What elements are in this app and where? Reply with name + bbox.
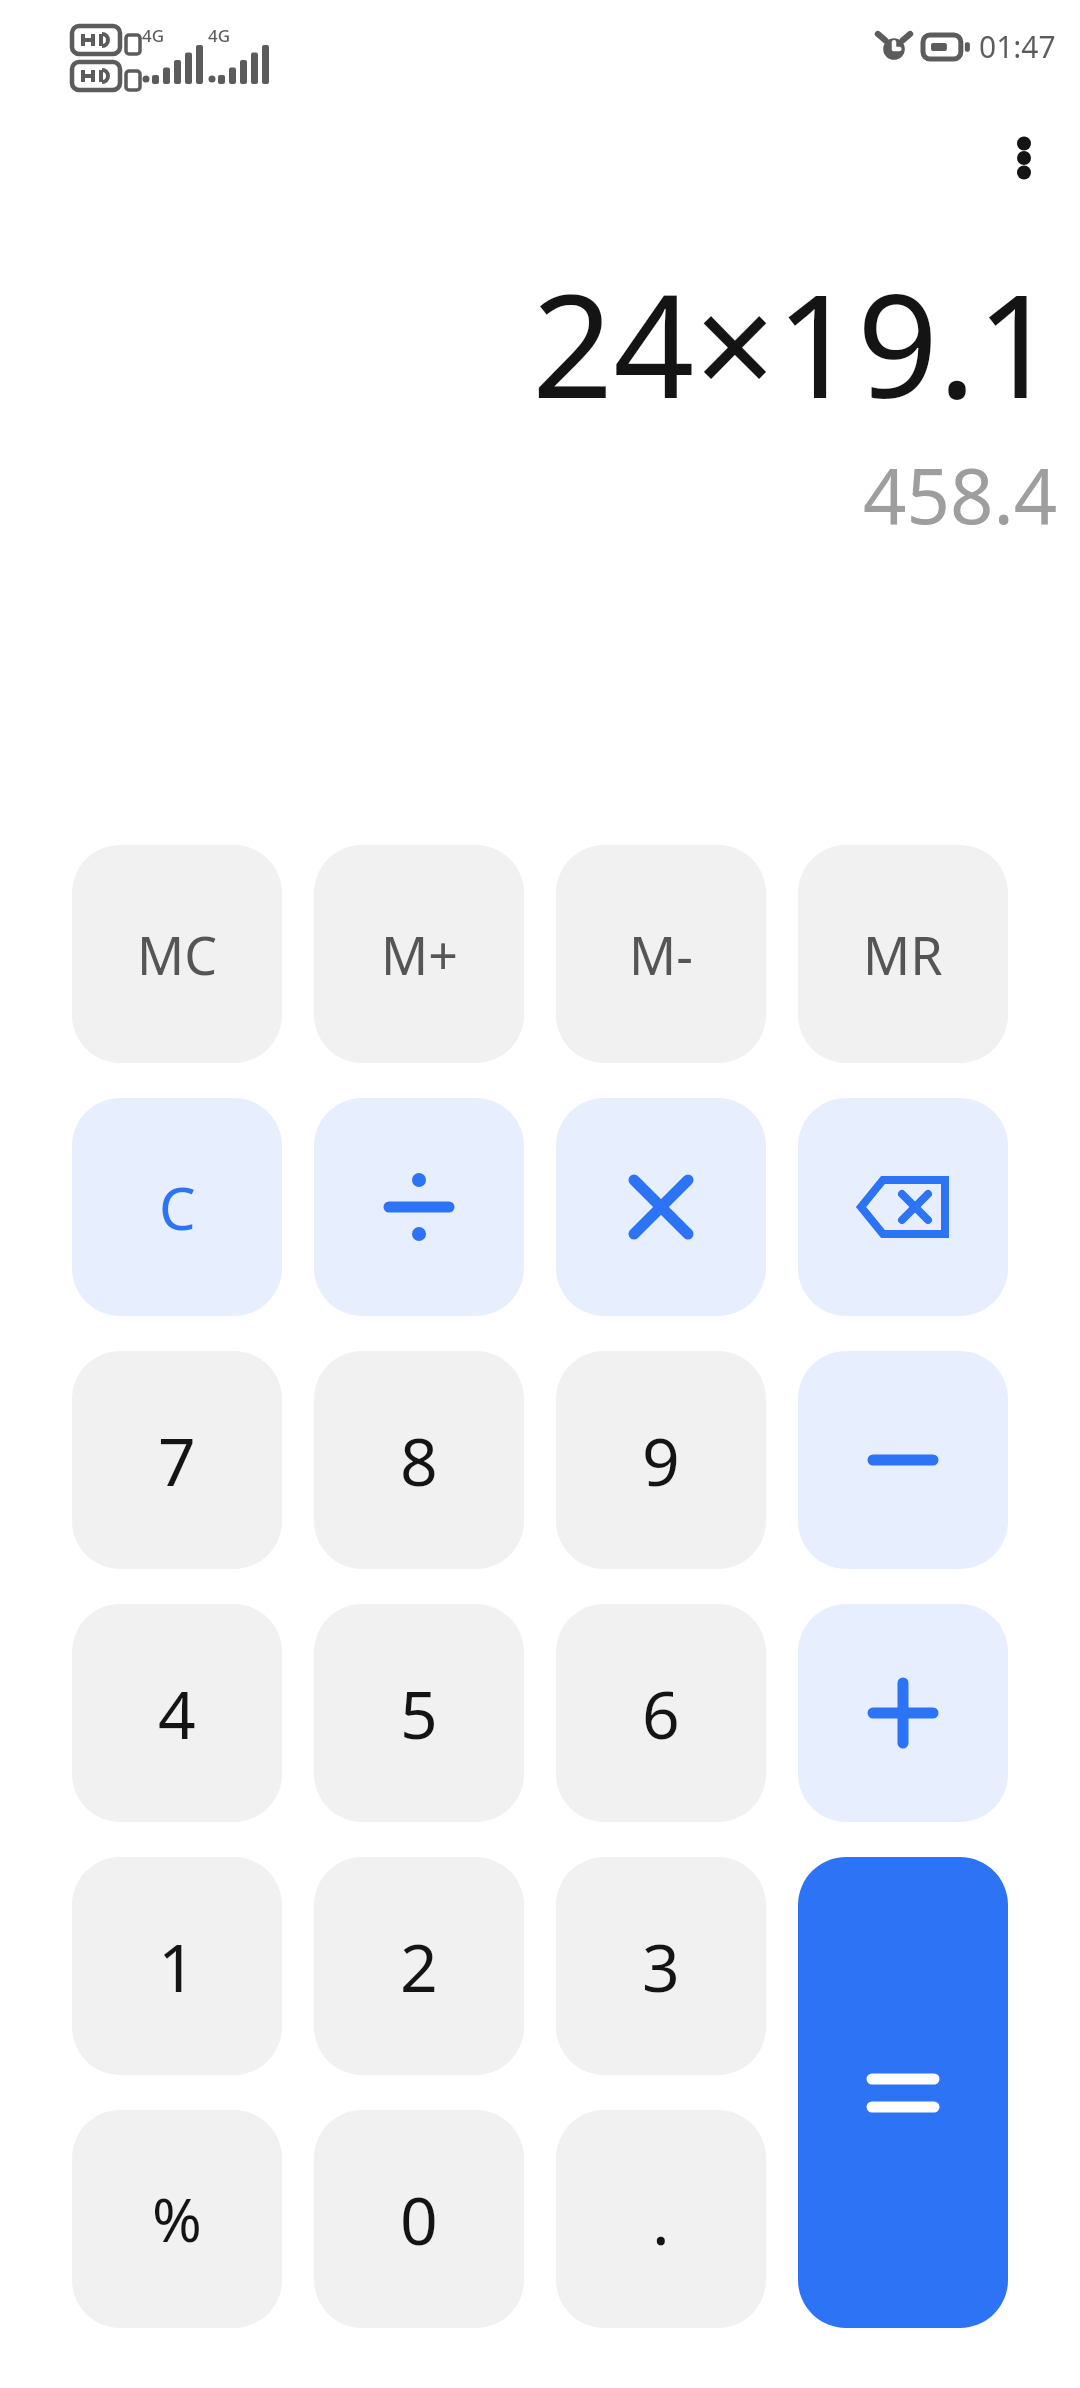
button[interactable]: 1: [72, 1857, 282, 2075]
button[interactable]: Divide: [314, 1098, 524, 1316]
staticText: 2: [400, 1921, 438, 2011]
staticText: 9: [642, 1415, 680, 1505]
staticText: MC: [137, 919, 218, 990]
button[interactable]: 6: [556, 1604, 766, 1822]
staticText: 01:47: [979, 26, 1056, 67]
button[interactable]: MC: [72, 845, 282, 1063]
button[interactable]: More options: [982, 116, 1066, 200]
staticText: MR: [863, 919, 943, 990]
button[interactable]: 5: [314, 1604, 524, 1822]
staticText: C: [159, 1168, 196, 1247]
button[interactable]: Equals: [798, 1857, 1008, 2328]
button[interactable]: %: [72, 2110, 282, 2328]
button[interactable]: .: [556, 2110, 766, 2328]
button[interactable]: Multiply: [556, 1098, 766, 1316]
staticText: 8: [400, 1415, 438, 1505]
staticText: 3: [642, 1921, 680, 2011]
staticText: %: [152, 2178, 202, 2260]
button[interactable]: 4: [72, 1604, 282, 1822]
button[interactable]: M+: [314, 845, 524, 1063]
staticText: 6: [642, 1668, 680, 1758]
button[interactable]: Plus: [798, 1604, 1008, 1822]
staticText: 5: [400, 1668, 438, 1758]
staticText: .: [652, 2174, 670, 2264]
staticText: 0: [400, 2174, 438, 2264]
staticText: 4: [158, 1668, 196, 1758]
staticText: 1: [158, 1921, 196, 2011]
button[interactable]: MR: [798, 845, 1008, 1063]
staticText: M-: [629, 919, 693, 990]
staticText: 24×19.1: [532, 246, 1058, 439]
staticText: 4G: [208, 24, 231, 47]
button[interactable]: C: [72, 1098, 282, 1316]
staticText: 7: [158, 1415, 196, 1505]
button[interactable]: Minus: [798, 1351, 1008, 1569]
button[interactable]: 9: [556, 1351, 766, 1569]
button[interactable]: 2: [314, 1857, 524, 2075]
button[interactable]: M-: [556, 845, 766, 1063]
staticText: 4G: [142, 24, 165, 47]
button[interactable]: Backspace: [798, 1098, 1008, 1316]
button[interactable]: 8: [314, 1351, 524, 1569]
staticText: 458.4: [863, 443, 1058, 547]
staticText: M+: [381, 919, 458, 990]
button[interactable]: 3: [556, 1857, 766, 2075]
button[interactable]: 0: [314, 2110, 524, 2328]
button[interactable]: 7: [72, 1351, 282, 1569]
